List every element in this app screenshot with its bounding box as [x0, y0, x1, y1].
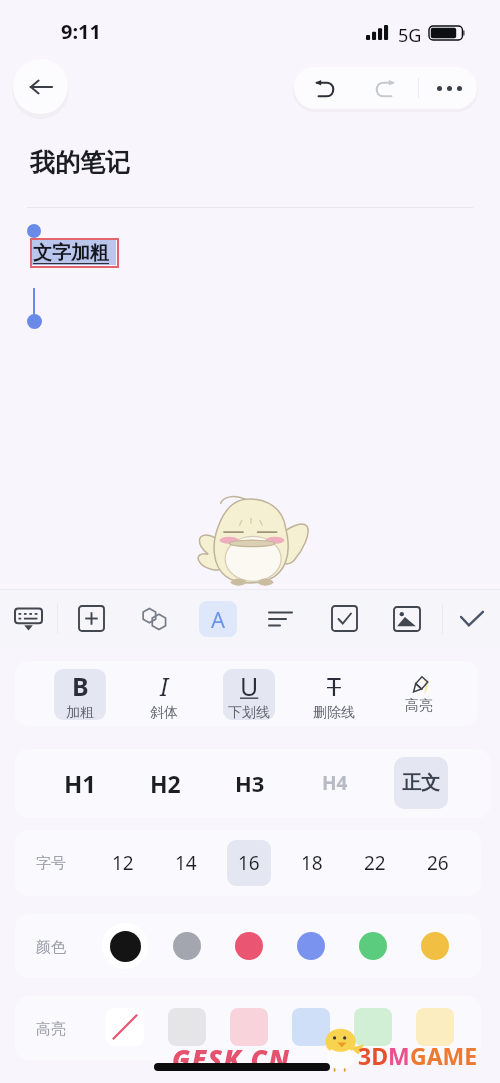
- button[interactable]: 12: [101, 840, 145, 886]
- staticText: 18: [301, 850, 323, 876]
- button[interactable]: T: [308, 669, 360, 720]
- button[interactable]: H3: [223, 757, 277, 809]
- button[interactable]: Insert: [59, 589, 123, 648]
- button[interactable]: Checklist: [312, 589, 376, 648]
- staticText: 5G: [398, 23, 422, 48]
- staticText: 颜色: [36, 938, 66, 957]
- staticText: 高亮: [405, 697, 433, 715]
- button[interactable]: H1: [53, 757, 107, 809]
- button[interactable]: H2: [138, 757, 192, 809]
- button[interactable]: I: [138, 669, 190, 720]
- button[interactable]: U: [223, 669, 275, 720]
- staticText: I: [160, 669, 169, 703]
- button[interactable]: 18: [290, 840, 334, 886]
- staticText: 26: [427, 850, 449, 876]
- button[interactable]: 正文: [394, 757, 448, 809]
- button[interactable]: [168, 1008, 206, 1046]
- staticText: 高亮: [36, 1020, 66, 1039]
- staticText: 22: [364, 850, 386, 876]
- staticText: 下划线: [228, 704, 270, 720]
- button[interactable]: [412, 923, 458, 969]
- staticText: 文字加粗: [33, 241, 109, 265]
- button[interactable]: Keyboard: [0, 589, 57, 648]
- button[interactable]: 高亮: [393, 669, 445, 720]
- staticText: 删除线: [313, 704, 355, 720]
- staticText: GESK.CN: [172, 1041, 291, 1076]
- button[interactable]: Done: [443, 589, 500, 648]
- button[interactable]: Redo: [358, 67, 413, 109]
- button[interactable]: [226, 923, 272, 969]
- button[interactable]: [288, 923, 334, 969]
- button[interactable]: Text format: [186, 589, 250, 648]
- staticText: H2: [150, 768, 181, 799]
- staticText: M: [388, 1040, 410, 1071]
- button[interactable]: [102, 923, 148, 969]
- button[interactable]: B: [54, 669, 106, 720]
- button[interactable]: Back: [13, 59, 68, 114]
- button[interactable]: 16: [227, 840, 271, 886]
- button[interactable]: Tag: [123, 589, 187, 648]
- button[interactable]: More options: [422, 67, 477, 109]
- button[interactable]: [106, 1008, 144, 1046]
- staticText: B: [72, 669, 89, 703]
- button[interactable]: Image: [375, 589, 439, 648]
- staticText: GAME: [410, 1040, 478, 1071]
- button[interactable]: H4: [308, 757, 362, 809]
- button[interactable]: [292, 1008, 330, 1046]
- button[interactable]: Undo: [297, 67, 352, 109]
- button[interactable]: [350, 923, 396, 969]
- staticText: 9:11: [61, 18, 101, 45]
- staticText: 16: [238, 850, 260, 876]
- staticText: H4: [322, 770, 348, 796]
- staticText: 12: [112, 850, 134, 876]
- staticText: 14: [175, 850, 197, 876]
- button[interactable]: [164, 923, 210, 969]
- staticText: A: [211, 604, 226, 634]
- staticText: 字号: [36, 854, 66, 873]
- button[interactable]: 26: [416, 840, 460, 886]
- staticText: 我的笔记: [30, 147, 130, 178]
- staticText: 加粗: [66, 704, 94, 720]
- staticText: 斜体: [150, 704, 178, 720]
- button[interactable]: 22: [353, 840, 397, 886]
- button[interactable]: List: [248, 589, 312, 648]
- button[interactable]: [230, 1008, 268, 1046]
- staticText: T: [327, 669, 341, 703]
- staticText: H3: [235, 768, 265, 798]
- staticText: 3D: [358, 1040, 388, 1071]
- staticText: 正文: [402, 771, 440, 795]
- button[interactable]: [354, 1008, 392, 1046]
- staticText: H1: [64, 767, 97, 800]
- button[interactable]: 14: [164, 840, 208, 886]
- button[interactable]: [416, 1008, 454, 1046]
- staticText: U: [240, 669, 259, 703]
